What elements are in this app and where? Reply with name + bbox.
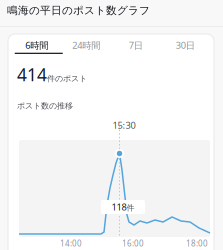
staticText: 118 [111,201,126,213]
staticText: 6時間 [25,39,48,51]
staticText: ポスト数の推移 [17,101,73,111]
button[interactable]: 24時間 [61,36,111,54]
button[interactable]: 6時間 [12,36,61,54]
button[interactable]: 7日 [111,36,160,54]
button[interactable]: 30日 [160,36,210,54]
staticText: 16:00 [122,238,144,249]
staticText: 18:00 [186,238,208,249]
staticText: 7日 [129,39,143,51]
staticText: 30日 [176,39,195,51]
staticText: 件のポスト [47,74,87,83]
staticText: 鳴海の平日のポスト数グラフ [7,4,150,17]
staticText: 24時間 [72,39,100,51]
staticText: 414 [17,63,47,86]
staticText: 15:30 [112,119,135,131]
staticText: 件 [126,203,134,213]
staticText: 14:00 [60,238,82,249]
